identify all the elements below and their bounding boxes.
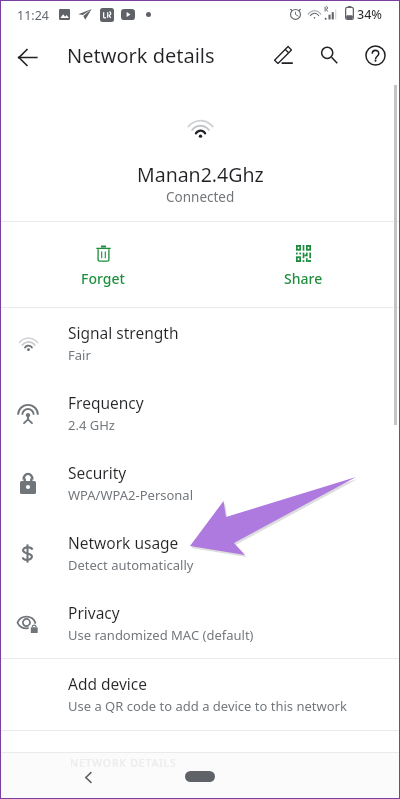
staticText: Use randomized MAC (default) <box>68 626 254 644</box>
staticText: Network details <box>67 42 215 69</box>
button[interactable]: Edit <box>261 32 306 77</box>
button[interactable]: Frequency <box>0 378 400 448</box>
staticText: Detect automatically <box>68 556 194 574</box>
button[interactable]: Privacy <box>0 588 400 658</box>
staticText: 11:24 <box>17 7 49 24</box>
button[interactable]: Help <box>353 33 398 78</box>
button[interactable]: Signal strength <box>0 308 400 378</box>
button[interactable]: Network usage <box>0 518 400 588</box>
staticText: Privacy <box>68 602 120 623</box>
staticText: Forget <box>81 269 125 288</box>
button[interactable]: Add device <box>0 659 400 729</box>
staticText: Use a QR code to add a device to this ne… <box>68 697 347 715</box>
button[interactable]: Forget <box>0 222 200 307</box>
staticText: NETWORK DETAILS <box>70 756 177 770</box>
staticText: Network usage <box>68 532 179 553</box>
staticText: Security <box>68 462 127 483</box>
staticText: Signal strength <box>68 322 179 343</box>
button[interactable]: Search <box>306 32 351 77</box>
staticText: Connected <box>166 188 235 206</box>
staticText: Manan2.4Ghz <box>137 161 264 188</box>
button[interactable]: Security <box>0 448 400 518</box>
staticText: 2.4 GHz <box>68 416 115 434</box>
button[interactable]: Home <box>185 771 215 782</box>
button[interactable]: Share <box>200 222 400 307</box>
staticText: Fair <box>68 346 91 364</box>
button[interactable]: Back <box>76 765 100 789</box>
staticText: 34% <box>357 6 382 23</box>
staticText: Add device <box>68 673 148 694</box>
staticText: Share <box>284 269 323 288</box>
button[interactable]: Back <box>4 34 50 80</box>
staticText: Frequency <box>68 392 144 413</box>
staticText: WPA/WPA2-Personal <box>68 486 194 504</box>
